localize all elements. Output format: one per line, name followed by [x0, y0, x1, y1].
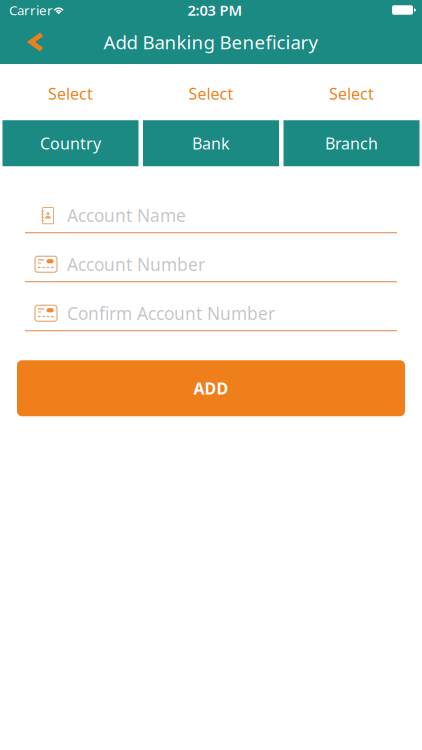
- button[interactable]: Select: [283, 83, 419, 104]
- button[interactable]: Country: [2, 120, 138, 166]
- staticText: Account Name: [67, 204, 186, 227]
- staticText: Branch: [325, 133, 378, 154]
- button[interactable]: ADD: [17, 360, 405, 416]
- staticText: Select: [188, 83, 233, 104]
- button[interactable]: Select: [2, 83, 138, 104]
- staticText: 2:03 PM: [187, 0, 242, 20]
- staticText: Confirm Account Number: [67, 302, 275, 325]
- staticText: Bank: [192, 133, 230, 154]
- button[interactable]: Branch: [283, 120, 419, 166]
- staticText: Select: [48, 83, 93, 104]
- button[interactable]: Select: [143, 83, 279, 104]
- button[interactable]: Bank: [143, 120, 279, 166]
- staticText: Select: [329, 83, 374, 104]
- staticText: Account Number: [67, 253, 205, 276]
- staticText: Add Banking Beneficiary: [103, 30, 318, 54]
- staticText: Carrier: [9, 1, 53, 19]
- button[interactable]: Back: [11, 20, 61, 64]
- staticText: ADD: [193, 378, 228, 399]
- staticText: Country: [40, 133, 101, 154]
